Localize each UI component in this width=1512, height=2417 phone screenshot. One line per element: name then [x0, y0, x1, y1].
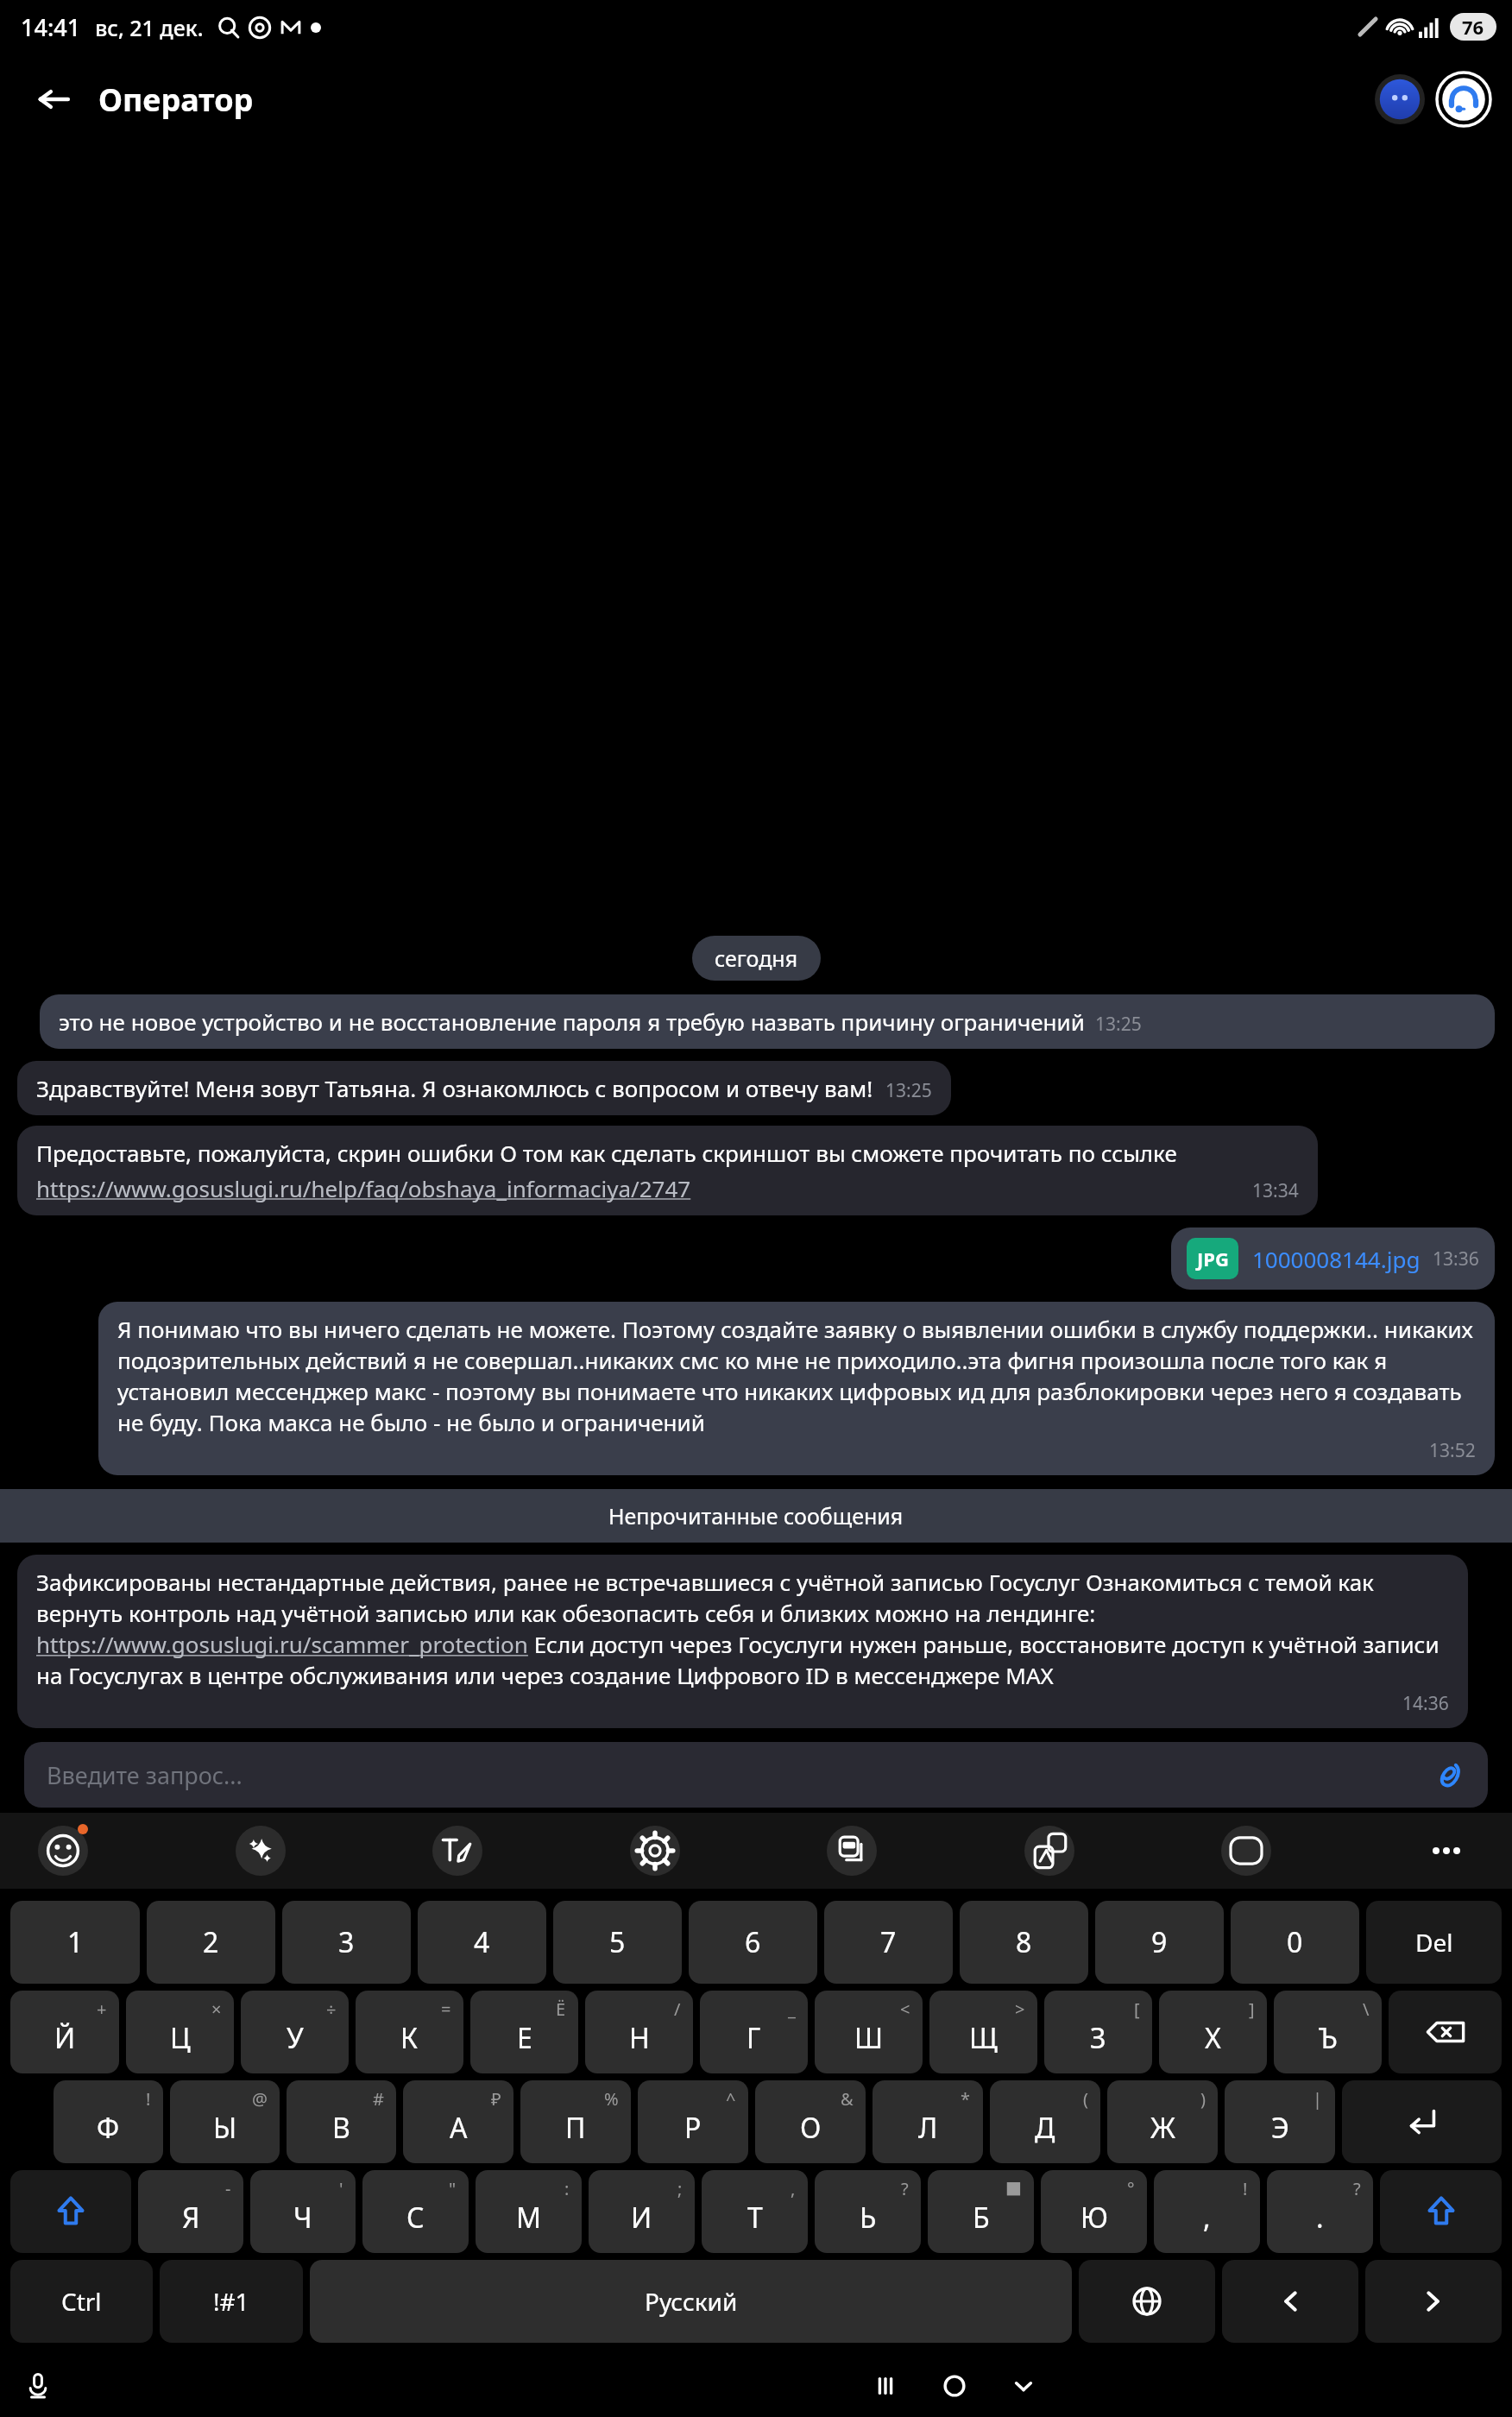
button[interactable]: Поддержка	[1434, 70, 1493, 129]
button[interactable]: |	[1225, 2080, 1335, 2163]
button[interactable]: 0	[1231, 1901, 1359, 1984]
button[interactable]: :	[476, 2170, 582, 2253]
button[interactable]: Домой	[920, 2355, 989, 2417]
button[interactable]: '	[250, 2170, 356, 2253]
staticText: Щ	[969, 2019, 998, 2057]
staticText: _	[788, 1997, 796, 2021]
button[interactable]: left	[1222, 2260, 1358, 2343]
button[interactable]: AI	[232, 1822, 289, 1879]
button[interactable]: ]	[1159, 1991, 1267, 2073]
button[interactable]: 4	[418, 1901, 546, 1984]
button[interactable]: _	[700, 1991, 808, 2073]
button[interactable]: shift	[10, 2170, 131, 2253]
button[interactable]: ■	[928, 2170, 1034, 2253]
staticText: 3	[338, 1923, 355, 1961]
button[interactable]: enter	[1342, 2080, 1502, 2163]
staticText: Ц	[170, 2019, 191, 2057]
button[interactable]: Текст	[429, 1822, 486, 1879]
button[interactable]: >	[929, 1991, 1037, 2073]
staticText: 5	[609, 1923, 626, 1961]
staticText: Ю	[1080, 2199, 1108, 2237]
button[interactable]: Я понимаю что вы ничего сделать не может…	[98, 1302, 1495, 1475]
button[interactable]: Здравствуйте! Меня зовут Татьяна. Я озна…	[17, 1061, 951, 1115]
button[interactable]: shift	[1380, 2170, 1502, 2253]
button[interactable]: [	[1044, 1991, 1152, 2073]
button[interactable]: Ё	[470, 1991, 578, 2073]
staticText: 1000008144.jpg	[1252, 1244, 1421, 1274]
staticText: Ж	[1150, 2109, 1175, 2147]
button[interactable]: Ассистент	[1372, 72, 1427, 127]
button[interactable]: #	[287, 2080, 396, 2163]
button[interactable]: )	[1107, 2080, 1218, 2163]
button[interactable]: %	[520, 2080, 631, 2163]
button[interactable]: -	[138, 2170, 243, 2253]
staticText: ^	[726, 2087, 736, 2111]
button[interactable]: /	[585, 1991, 693, 2073]
button[interactable]: +	[10, 1991, 119, 2073]
button[interactable]: Эмодзи	[35, 1822, 91, 1879]
button[interactable]: Назад	[29, 75, 78, 123]
button[interactable]: ,	[702, 2170, 808, 2253]
button[interactable]: Прикрепить файл	[1427, 1754, 1469, 1795]
button[interactable]: globe	[1079, 2260, 1215, 2343]
staticText: К	[400, 2019, 419, 2057]
button[interactable]: JPG	[1171, 1227, 1495, 1290]
staticText: https://www.gosuslugi.ru/scammer_protect…	[36, 1629, 1449, 1691]
button[interactable]: Ctrl	[10, 2260, 153, 2343]
staticText: 1	[67, 1923, 84, 1961]
staticText: 7	[880, 1923, 897, 1961]
button[interactable]: right	[1365, 2260, 1502, 2343]
button[interactable]: Предоставьте, пожалуйста, скрин ошибки О…	[17, 1126, 1318, 1215]
button[interactable]: ?	[1267, 2170, 1373, 2253]
button[interactable]: ×	[126, 1991, 234, 2073]
button[interactable]: Перевод	[1021, 1822, 1078, 1879]
button[interactable]: !	[54, 2080, 163, 2163]
button[interactable]: @	[170, 2080, 280, 2163]
staticText: Введите запрос...	[47, 1759, 243, 1791]
button[interactable]: *	[873, 2080, 983, 2163]
button[interactable]: ^	[638, 2080, 748, 2163]
button[interactable]: Настройки	[627, 1822, 684, 1879]
button[interactable]: Введите запрос...	[24, 1742, 1488, 1808]
button[interactable]: Del	[1366, 1901, 1502, 1984]
button[interactable]: 3	[282, 1901, 411, 1984]
button[interactable]: Клавиатуры	[823, 1822, 880, 1879]
button[interactable]: 7	[824, 1901, 953, 1984]
button[interactable]: Зафиксированы нестандартные действия, ра…	[17, 1555, 1468, 1728]
button[interactable]: ?	[815, 2170, 921, 2253]
button[interactable]: !#1	[160, 2260, 303, 2343]
staticText: 14:41	[21, 11, 81, 43]
button[interactable]: °	[1041, 2170, 1147, 2253]
button[interactable]: это не новое устройство и не восстановле…	[40, 994, 1495, 1049]
button[interactable]: Микрофон	[16, 2363, 60, 2408]
button[interactable]: Скрыть клавиатуру	[989, 2355, 1058, 2417]
button[interactable]: !	[1154, 2170, 1260, 2253]
button[interactable]: Пароли	[1218, 1822, 1275, 1879]
button[interactable]: =	[356, 1991, 463, 2073]
button[interactable]: 1	[10, 1901, 140, 1984]
button[interactable]: ₽	[403, 2080, 513, 2163]
button[interactable]: \	[1274, 1991, 1382, 2073]
button[interactable]: ÷	[241, 1991, 349, 2073]
button[interactable]: &	[755, 2080, 866, 2163]
staticText: 6	[745, 1923, 761, 1961]
staticText: !	[1243, 2177, 1248, 2200]
button[interactable]: 8	[960, 1901, 1088, 1984]
button[interactable]: ;	[589, 2170, 695, 2253]
button[interactable]: 2	[147, 1901, 275, 1984]
staticText: %	[604, 2087, 619, 2111]
staticText: ?	[1353, 2177, 1361, 2200]
button[interactable]: Ещё	[1415, 1820, 1477, 1882]
button[interactable]: 6	[689, 1901, 817, 1984]
button[interactable]: bksp	[1389, 1991, 1502, 2073]
button[interactable]: Недавние	[851, 2355, 920, 2417]
staticText: 13:25	[885, 1078, 932, 1103]
staticText: Я понимаю что вы ничего сделать не может…	[117, 1314, 1476, 1438]
button[interactable]: Русский	[310, 2260, 1072, 2343]
button[interactable]: "	[362, 2170, 469, 2253]
button[interactable]: <	[815, 1991, 923, 2073]
button[interactable]: (	[990, 2080, 1100, 2163]
button[interactable]: 9	[1095, 1901, 1224, 1984]
staticText: ,	[1203, 2199, 1211, 2237]
button[interactable]: 5	[553, 1901, 682, 1984]
